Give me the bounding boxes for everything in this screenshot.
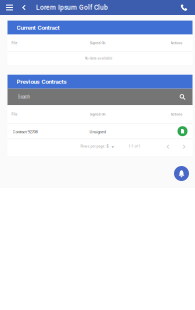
staticText: Contract 92708 <box>12 129 37 134</box>
staticText: Signed On <box>89 41 105 45</box>
button[interactable]: Notifications <box>174 166 189 181</box>
staticText: Previous Contracts <box>16 78 66 85</box>
staticText: File <box>11 41 17 45</box>
staticText: 1-1 of 1 <box>128 144 140 148</box>
staticText: Current Contract <box>16 24 59 31</box>
button[interactable]: Menu <box>2 0 17 15</box>
button[interactable]: Search <box>177 89 187 105</box>
staticText: Signed On <box>89 112 105 116</box>
button[interactable]: Call <box>176 0 192 15</box>
staticText: 5 <box>106 144 108 148</box>
staticText: Lorem Ipsum Golf Club <box>36 4 108 11</box>
button[interactable]: Back <box>17 0 31 15</box>
staticText: Search <box>17 94 29 99</box>
staticText: No data available <box>84 56 112 60</box>
staticText: File <box>11 112 17 116</box>
staticText: Unsigned <box>89 129 105 134</box>
button[interactable]: Download contract <box>177 126 187 136</box>
staticText: Rows per page: <box>80 144 105 148</box>
staticText: Actions <box>170 112 182 116</box>
button[interactable]: Previous page <box>163 142 172 151</box>
staticText: Actions <box>170 41 182 45</box>
button[interactable]: Next page <box>179 142 188 151</box>
